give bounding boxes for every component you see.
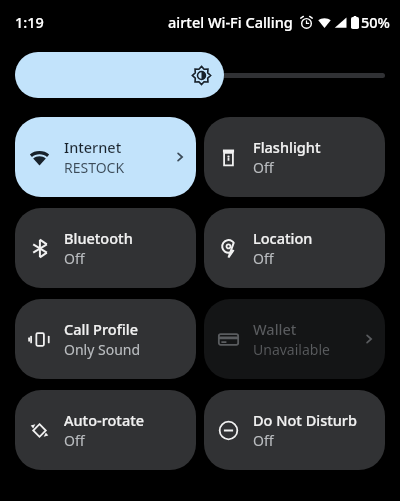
staticText: Off <box>253 431 274 450</box>
staticText: Off <box>64 431 85 450</box>
staticText: Call Profile <box>64 319 138 339</box>
staticText: Unavailable <box>253 340 330 359</box>
button[interactable]: Wallet <box>204 299 385 379</box>
button[interactable]: Brightness <box>15 52 385 98</box>
staticText: Flashlight <box>253 137 321 157</box>
button[interactable]: Internet <box>15 117 196 197</box>
staticText: Location <box>253 228 313 248</box>
staticText: Off <box>253 249 274 268</box>
button[interactable]: Auto-rotate <box>15 390 196 470</box>
staticText: RESTOCK <box>64 158 125 177</box>
staticText: Wallet <box>253 319 297 339</box>
staticText: Internet <box>64 137 122 157</box>
button[interactable]: Call Profile <box>15 299 196 379</box>
staticText: Off <box>64 249 85 268</box>
staticText: Do Not Disturb <box>253 410 357 430</box>
staticText: Off <box>253 158 274 177</box>
staticText: 1:19 <box>15 12 44 32</box>
button[interactable]: Location <box>204 208 385 288</box>
staticText: 50% <box>361 12 390 32</box>
staticText: airtel Wi-Fi Calling <box>168 12 293 32</box>
staticText: Auto-rotate <box>64 410 145 430</box>
button[interactable]: Flashlight <box>204 117 385 197</box>
button[interactable]: Bluetooth <box>15 208 196 288</box>
staticText: Only Sound <box>64 340 141 359</box>
button[interactable]: Do Not Disturb <box>204 390 385 470</box>
staticText: Bluetooth <box>64 228 133 248</box>
